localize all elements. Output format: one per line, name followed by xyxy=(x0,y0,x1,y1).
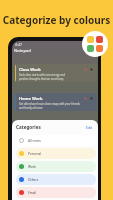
staticText: Get aftershave hours done away with your… xyxy=(19,102,80,110)
button[interactable]: Edit xyxy=(86,125,93,130)
staticText: 4:47 xyxy=(15,42,22,47)
staticText: All notes xyxy=(28,139,41,143)
button[interactable]: Work xyxy=(16,161,96,172)
staticText: Notepad xyxy=(14,48,31,53)
button[interactable]: Home Work xyxy=(15,93,97,111)
staticText: Email xyxy=(28,191,37,195)
button[interactable]: Personal xyxy=(16,148,96,159)
button[interactable]: All notes xyxy=(16,135,96,146)
staticText: Others xyxy=(28,178,39,182)
staticText: Edit xyxy=(86,125,93,130)
staticText: Each class starts with new energy and po… xyxy=(19,73,65,81)
staticText: Work xyxy=(28,165,36,169)
button[interactable]: Colour categories xyxy=(82,31,108,57)
button[interactable]: Class Work xyxy=(15,64,97,82)
staticText: Categories xyxy=(16,124,41,130)
button[interactable]: Email xyxy=(16,187,96,198)
staticText: Home Work xyxy=(19,96,43,101)
staticText: Class Work xyxy=(19,67,41,72)
button[interactable]: Others xyxy=(16,174,96,185)
staticText: Categorize by colours xyxy=(0,13,113,27)
staticText: Personal xyxy=(28,152,42,156)
